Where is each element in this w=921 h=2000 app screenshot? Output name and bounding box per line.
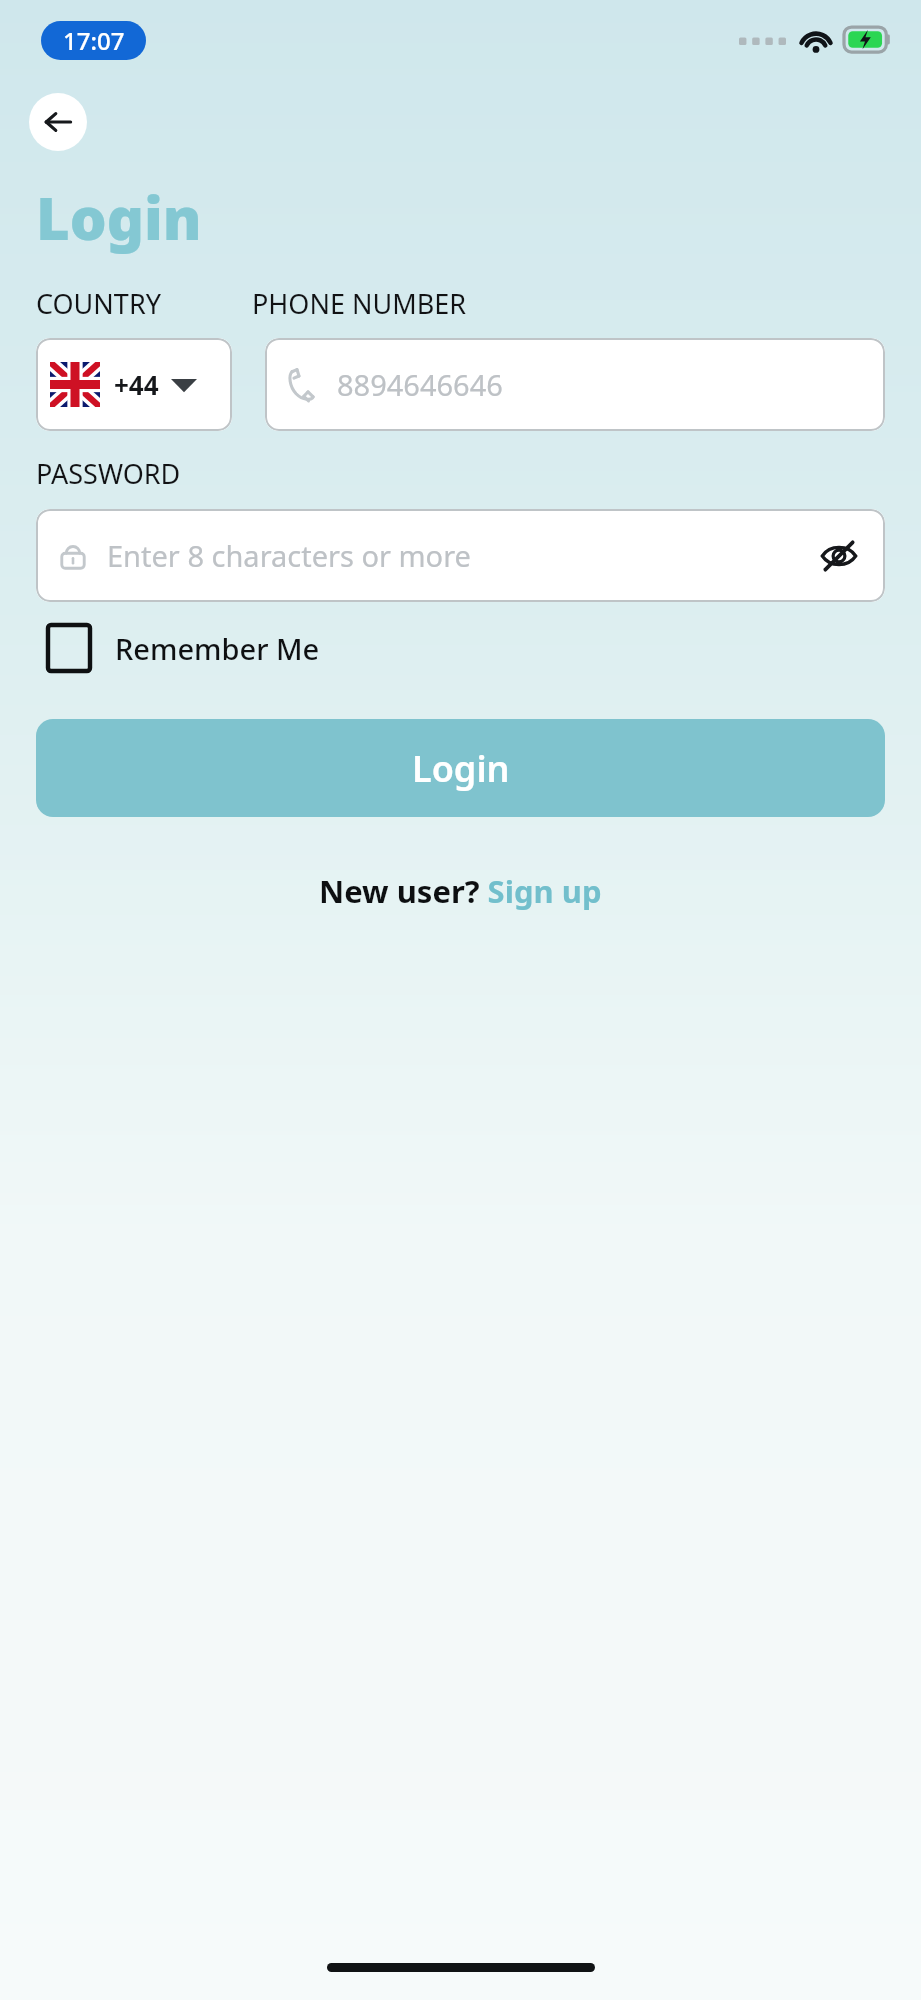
staticText: 8894646646 xyxy=(337,365,503,404)
button[interactable]: Back xyxy=(29,93,87,151)
staticText: COUNTRY xyxy=(36,285,161,322)
button[interactable]: New user? Sign up xyxy=(319,870,602,912)
staticText: PASSWORD xyxy=(36,455,181,492)
staticText: Login xyxy=(412,744,510,793)
staticText: Enter 8 characters or more xyxy=(107,536,471,575)
button[interactable]: +44 xyxy=(36,338,232,431)
staticText: +44 xyxy=(114,367,159,402)
staticText: New user? Sign up xyxy=(319,870,602,912)
staticText: 17:07 xyxy=(63,24,125,57)
button[interactable]: Show password xyxy=(817,534,861,578)
button[interactable]: 8894646646 xyxy=(265,338,885,431)
button[interactable]: Enter 8 characters or more xyxy=(36,509,885,602)
staticText: PHONE NUMBER xyxy=(252,285,467,322)
button[interactable]: Login xyxy=(36,719,885,817)
button[interactable]: Remember Me xyxy=(44,619,324,677)
staticText: Remember Me xyxy=(115,629,320,668)
staticText: Login xyxy=(36,178,202,257)
